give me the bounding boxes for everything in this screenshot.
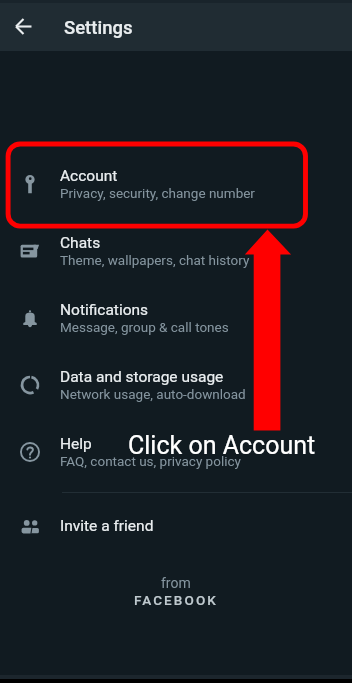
staticText: from xyxy=(161,575,191,591)
button[interactable]: Back xyxy=(0,0,47,51)
button[interactable]: Chats xyxy=(0,217,352,284)
staticText: Click on Account xyxy=(128,431,316,460)
button[interactable]: Notifications xyxy=(0,284,352,351)
staticText: FACEBOOK xyxy=(134,592,218,608)
staticText: Invite a friend xyxy=(60,517,154,535)
button[interactable]: Data and storage usage xyxy=(0,351,352,418)
staticText: Settings xyxy=(64,17,133,39)
staticText: Theme, wallpapers, chat history xyxy=(60,252,250,268)
staticText: Network usage, auto-download xyxy=(60,386,246,402)
staticText: FAQ, contact us, privacy policy xyxy=(60,453,241,469)
staticText: Data and storage usage xyxy=(60,368,224,386)
staticText: Privacy, security, change number xyxy=(60,185,255,201)
button[interactable]: Account xyxy=(0,150,352,217)
staticText: Message, group & call tones xyxy=(60,319,229,335)
staticText: Account xyxy=(60,167,118,185)
staticText: Notifications xyxy=(60,301,149,319)
staticText: Help xyxy=(60,435,92,453)
button[interactable]: Help xyxy=(0,418,352,485)
button[interactable]: Invite a friend xyxy=(0,501,352,551)
staticText: Chats xyxy=(60,234,101,252)
